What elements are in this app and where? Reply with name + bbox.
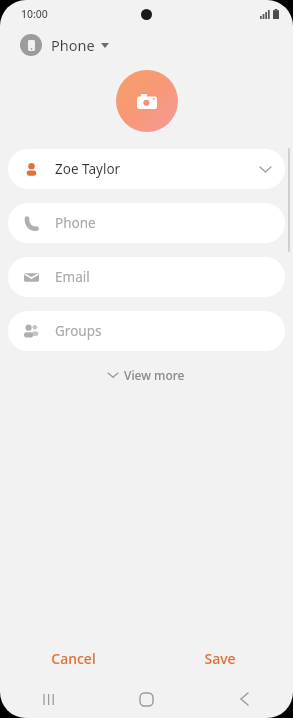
button[interactable]: Zoe Taylor [8, 149, 285, 189]
staticText: 10:00 [21, 7, 48, 21]
staticText: Groups [55, 322, 102, 340]
button[interactable]: Email [8, 257, 285, 297]
button[interactable]: Phone [8, 203, 285, 243]
button[interactable]: Cancel [0, 641, 146, 675]
staticText: Phone [51, 35, 95, 55]
staticText: Save [204, 649, 236, 668]
staticText: Cancel [51, 649, 96, 668]
button[interactable]: View more [98, 362, 195, 388]
staticText: Phone [55, 214, 96, 232]
staticText: View more [124, 367, 185, 383]
button[interactable]: Home [97, 686, 195, 712]
button[interactable]: Phone [16, 28, 113, 62]
button[interactable]: Back [195, 686, 293, 712]
button[interactable]: Save [146, 641, 293, 675]
button[interactable]: Recents [0, 686, 97, 712]
button[interactable]: Add photo [116, 70, 178, 132]
staticText: Zoe Taylor [55, 160, 121, 178]
staticText: Email [55, 268, 90, 286]
button[interactable]: Groups [8, 311, 285, 351]
